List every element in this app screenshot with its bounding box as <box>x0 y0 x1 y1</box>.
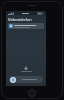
button[interactable]: Slide to answer <box>9 76 43 83</box>
button[interactable]: Status <box>6 66 46 72</box>
staticText: Videotelefon <box>8 17 32 22</box>
button[interactable]: Videotelefon <box>8 17 46 22</box>
button[interactable]: Home <box>28 89 36 97</box>
other: Status <box>24 66 28 70</box>
button[interactable] <box>8 23 44 29</box>
